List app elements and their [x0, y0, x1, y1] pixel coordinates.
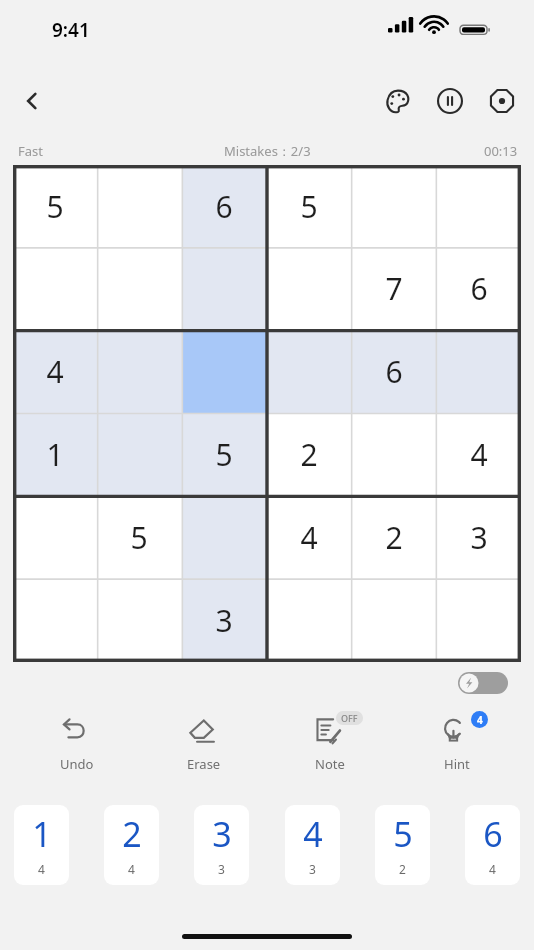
staticText: 7 [385, 268, 403, 309]
staticText: 3 [218, 861, 225, 877]
button[interactable]: Pause [430, 81, 470, 121]
staticText: Note [315, 755, 345, 773]
staticText: 2 [399, 861, 406, 877]
staticText: 3 [212, 811, 232, 857]
staticText: 6 [483, 811, 503, 857]
button[interactable]: 6 [436, 247, 521, 330]
button[interactable]: Theme [378, 81, 418, 121]
staticText: 4 [303, 811, 323, 857]
button[interactable] [266, 330, 351, 413]
button[interactable] [436, 330, 521, 413]
button[interactable] [436, 165, 521, 247]
button[interactable]: 6 [181, 165, 266, 247]
staticText: Undo [60, 755, 94, 773]
button[interactable] [13, 496, 97, 579]
staticText: 4 [470, 434, 488, 475]
button[interactable] [13, 247, 97, 330]
staticText: Fast [18, 142, 43, 160]
staticText: 2 [300, 434, 318, 475]
button[interactable] [13, 579, 97, 662]
button[interactable]: 5 [266, 165, 351, 247]
button[interactable]: 4 [13, 330, 97, 413]
button[interactable]: Settings [482, 81, 522, 121]
button[interactable] [351, 579, 436, 662]
button[interactable] [351, 165, 436, 247]
button[interactable]: 6 [351, 330, 436, 413]
staticText: 5 [46, 186, 64, 227]
staticText: 4 [128, 861, 135, 877]
button[interactable]: 3 [194, 805, 249, 885]
staticText: 2 [385, 517, 403, 558]
button[interactable]: 1 [14, 805, 69, 885]
button[interactable] [97, 247, 181, 330]
staticText: 1 [46, 434, 64, 475]
button[interactable] [181, 496, 266, 579]
staticText: 6 [215, 186, 233, 227]
staticText: 4 [300, 517, 318, 558]
button[interactable]: Auto check [458, 672, 508, 694]
staticText: 4 [489, 861, 496, 877]
staticText: 3 [309, 861, 316, 877]
staticText: 00:13 [484, 142, 518, 160]
staticText: 4 [38, 861, 45, 877]
staticText: 3 [215, 600, 233, 641]
staticText: 2 [122, 811, 142, 857]
button[interactable] [97, 330, 181, 413]
button[interactable] [97, 579, 181, 662]
button[interactable]: 5 [375, 805, 430, 885]
button[interactable]: 2 [266, 413, 351, 496]
staticText: 3 [470, 517, 488, 558]
staticText: Erase [187, 755, 221, 773]
staticText: Hint [444, 755, 470, 773]
staticText: 6 [470, 268, 488, 309]
staticText: Mistakes：2/3 [224, 142, 311, 160]
staticText: 6 [385, 351, 403, 392]
staticText: 1 [32, 811, 52, 857]
button[interactable]: 5 [97, 496, 181, 579]
button[interactable] [266, 579, 351, 662]
button[interactable]: 2 [104, 805, 159, 885]
staticText: 5 [393, 811, 413, 857]
staticText: 9:41 [52, 17, 90, 43]
staticText: 5 [215, 434, 233, 475]
button[interactable] [181, 330, 266, 413]
button[interactable]: 4 [407, 710, 507, 773]
staticText: OFF [341, 712, 358, 724]
button[interactable] [97, 413, 181, 496]
staticText: 4 [46, 351, 64, 392]
button[interactable]: Undo [27, 710, 127, 773]
button[interactable]: 3 [436, 496, 521, 579]
button[interactable]: Erase [154, 710, 254, 773]
button[interactable]: 4 [266, 496, 351, 579]
button[interactable]: 5 [13, 165, 97, 247]
button[interactable]: Back [8, 77, 56, 125]
button[interactable]: 5 [181, 413, 266, 496]
button[interactable]: 4 [285, 805, 340, 885]
button[interactable] [436, 579, 521, 662]
button[interactable]: 2 [351, 496, 436, 579]
staticText: 5 [300, 186, 318, 227]
button[interactable]: 1 [13, 413, 97, 496]
button[interactable]: 3 [181, 579, 266, 662]
staticText: 4 [477, 713, 483, 727]
button[interactable] [97, 165, 181, 247]
button[interactable] [351, 413, 436, 496]
button[interactable]: 7 [351, 247, 436, 330]
staticText: 5 [130, 517, 148, 558]
button[interactable]: 6 [465, 805, 520, 885]
button[interactable] [266, 247, 351, 330]
button[interactable]: OFF [280, 710, 380, 773]
button[interactable]: 4 [436, 413, 521, 496]
button[interactable] [181, 247, 266, 330]
